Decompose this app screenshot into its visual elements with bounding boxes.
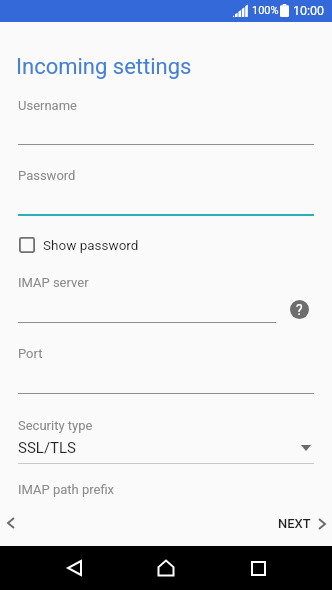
- staticText: 10:00: [293, 3, 325, 18]
- button[interactable]: NEXT: [268, 508, 332, 539]
- button[interactable]: Open security type dropdown: [292, 434, 320, 462]
- button[interactable]: Help: [285, 295, 314, 324]
- staticText: IMAP server: [18, 275, 89, 290]
- staticText: 100%: [252, 4, 279, 17]
- staticText: SSL/TLS: [18, 439, 77, 457]
- button[interactable]: Home: [144, 546, 188, 590]
- staticText: Password: [18, 168, 76, 183]
- staticText: Username: [18, 98, 77, 113]
- button[interactable]: Recent apps: [236, 546, 280, 590]
- staticText: IMAP path prefix: [18, 482, 115, 497]
- staticText: Incoming settings: [16, 54, 192, 80]
- staticText: ?: [296, 302, 303, 318]
- staticText: NEXT: [278, 516, 311, 531]
- button[interactable]: Previous: [0, 500, 34, 546]
- button[interactable]: Back: [52, 546, 96, 590]
- staticText: Security type: [18, 418, 93, 433]
- button[interactable]: Show password: [9, 231, 149, 259]
- staticText: Show password: [43, 237, 139, 253]
- staticText: Port: [18, 346, 43, 361]
